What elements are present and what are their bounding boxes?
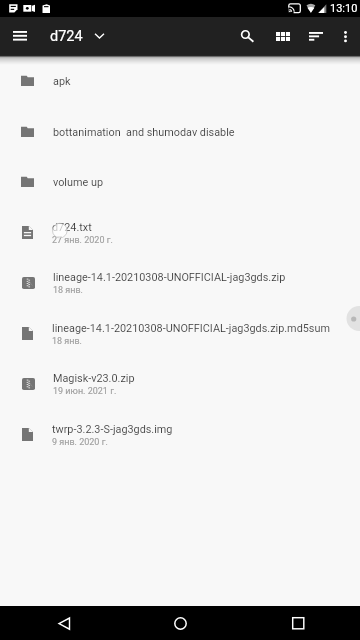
- button[interactable]: lineage-14.1-20210308-UNOFFICIAL-jag3gds…: [0, 257, 360, 308]
- staticText: 9 янв. 2020 г.: [52, 437, 108, 448]
- button[interactable]: More options: [331, 17, 359, 55]
- staticText: 19 июн. 2021 г.: [53, 386, 117, 397]
- button[interactable]: lineage-14.1-20210308-UNOFFICIAL-jag3gds…: [0, 308, 360, 359]
- staticText: lineage-14.1-20210308-UNOFFICIAL-jag3gds…: [52, 322, 330, 335]
- button[interactable]: Grid view: [266, 17, 300, 55]
- button[interactable]: Search: [231, 17, 265, 55]
- staticText: apk: [53, 75, 71, 88]
- button[interactable]: d724.txt: [0, 207, 360, 258]
- staticText: bottanimation and shumodav disable: [53, 126, 235, 139]
- button[interactable]: Magisk-v23.0.zip: [0, 358, 360, 409]
- staticText: 18 янв.: [53, 285, 83, 296]
- staticText: d724: [50, 28, 83, 45]
- button[interactable]: Home: [155, 606, 205, 640]
- button[interactable]: Recent apps: [273, 606, 323, 640]
- button[interactable]: Sort: [299, 17, 332, 55]
- button[interactable]: d724: [50, 17, 104, 55]
- staticText: 18 янв.: [52, 336, 82, 347]
- button[interactable]: bottanimation and shumodav disable: [0, 106, 360, 157]
- staticText: lineage-14.1-20210308-UNOFFICIAL-jag3gds…: [53, 271, 286, 284]
- staticText: 13:10: [330, 2, 358, 15]
- staticText: Magisk-v23.0.zip: [53, 372, 135, 385]
- staticText: volume up: [53, 176, 103, 189]
- staticText: twrp-3.2.3-S-jag3gds.img: [52, 423, 173, 436]
- button[interactable]: Navigation drawer: [6, 17, 33, 55]
- staticText: d724.txt: [52, 221, 92, 234]
- button[interactable]: volume up: [0, 156, 360, 207]
- button[interactable]: apk: [0, 55, 360, 106]
- staticText: 27 янв. 2020 г.: [52, 235, 113, 246]
- button[interactable]: Back: [39, 606, 89, 640]
- button[interactable]: twrp-3.2.3-S-jag3gds.img: [0, 409, 360, 460]
